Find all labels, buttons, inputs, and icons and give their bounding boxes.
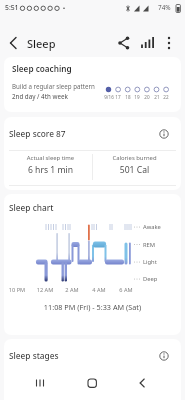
button[interactable] bbox=[160, 33, 178, 53]
staticText: 2 AM bbox=[60, 286, 84, 294]
button[interactable] bbox=[136, 33, 158, 53]
button[interactable]: Sleep score 87 bbox=[4, 117, 181, 190]
staticText: 21 bbox=[152, 94, 162, 100]
staticText: Sleep coaching bbox=[12, 63, 72, 74]
staticText: Calories burned bbox=[93, 154, 176, 162]
staticText: Awake bbox=[143, 223, 161, 231]
staticText: 20 bbox=[142, 94, 152, 100]
staticText: 74% bbox=[158, 3, 171, 12]
staticText: 4 AM bbox=[87, 286, 111, 294]
button[interactable] bbox=[158, 350, 170, 362]
button[interactable]: Sleep coaching bbox=[4, 57, 181, 112]
staticText: 9/16 bbox=[102, 94, 116, 100]
staticText: 12 AM bbox=[33, 286, 57, 294]
staticText: Build a regular sleep pattern bbox=[12, 82, 95, 90]
staticText: Sleep chart bbox=[9, 202, 54, 213]
button[interactable] bbox=[26, 370, 54, 396]
staticText: 17 bbox=[113, 94, 123, 100]
button[interactable]: Sleep chart bbox=[4, 194, 181, 335]
staticText: Sleep stages bbox=[9, 350, 59, 361]
staticText: 6 AM bbox=[114, 286, 138, 294]
button[interactable]: Sleep stages bbox=[4, 339, 181, 400]
button[interactable] bbox=[112, 33, 134, 53]
staticText: 5:51 bbox=[5, 3, 19, 12]
staticText: 2nd day / 4th week bbox=[12, 92, 69, 100]
staticText: 18 bbox=[123, 94, 133, 100]
staticText: 10 PM bbox=[5, 286, 29, 294]
staticText: 11:08 PM (Fri) - 5:33 AM (Sat) bbox=[4, 302, 181, 312]
staticText: 6 hrs 1 min bbox=[9, 164, 92, 176]
staticText: Sleep score 87 bbox=[9, 128, 66, 139]
button[interactable] bbox=[4, 33, 24, 53]
button[interactable] bbox=[158, 128, 170, 140]
staticText: 501 Cal bbox=[93, 164, 176, 176]
staticText: Actual sleep time bbox=[9, 154, 92, 162]
staticText: 22 bbox=[161, 94, 171, 100]
button[interactable] bbox=[78, 370, 106, 396]
button[interactable] bbox=[128, 370, 156, 396]
staticText: Light bbox=[143, 258, 157, 266]
staticText: Deep bbox=[143, 275, 158, 283]
staticText: Sleep bbox=[27, 36, 56, 51]
staticText: 19 bbox=[132, 94, 142, 100]
staticText: REM bbox=[143, 241, 156, 249]
